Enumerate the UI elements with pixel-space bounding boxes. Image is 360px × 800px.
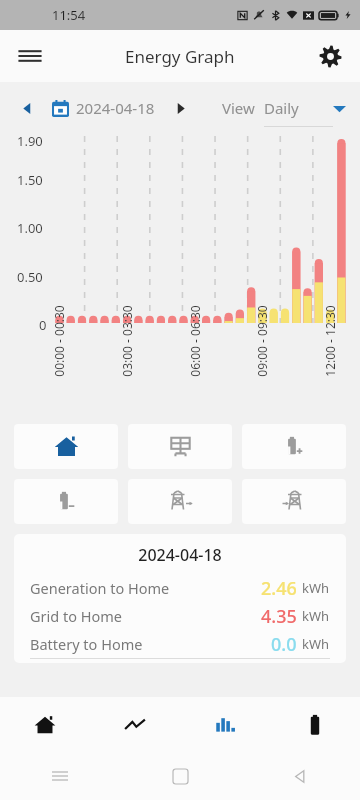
staticText: View [222, 98, 255, 118]
button[interactable]: From grid [242, 479, 346, 524]
staticText: kWh [302, 635, 330, 653]
button[interactable]: Battery charge [242, 424, 346, 469]
staticText: 0.50 [17, 268, 43, 286]
staticText: Battery to Home [30, 634, 143, 654]
button[interactable]: Home [14, 424, 118, 469]
button[interactable]: Battery [270, 697, 360, 752]
button[interactable]: Previous day [14, 95, 40, 121]
staticText: 06:00 - 06:30 [187, 305, 203, 377]
staticText: 00:00 - 00:30 [51, 305, 67, 377]
staticText: 2024-04-18 [76, 98, 155, 118]
staticText: kWh [302, 607, 330, 625]
staticText: Energy Graph [125, 45, 235, 68]
staticText: 2024-04-18 [30, 544, 330, 566]
button[interactable]: 2024-04-18 [52, 98, 155, 118]
staticText: 1.00 [17, 219, 43, 237]
staticText: Generation to Home [30, 578, 170, 598]
button[interactable]: Menu [10, 36, 50, 76]
staticText: 1.50 [17, 171, 43, 189]
button[interactable]: Trend [90, 697, 180, 752]
button[interactable]: Statistics [180, 697, 270, 752]
staticText: 1.90 [17, 132, 43, 150]
button[interactable]: Settings [310, 36, 350, 76]
staticText: 03:00 - 03:30 [119, 305, 135, 377]
staticText: Daily [264, 98, 299, 118]
button[interactable]: Solar [128, 424, 232, 469]
button[interactable]: Daily [264, 98, 346, 118]
staticText: 09:00 - 09:30 [254, 305, 270, 377]
staticText: 12:00 - 12:30 [322, 305, 338, 377]
staticText: kWh [302, 579, 330, 597]
staticText: Grid to Home [30, 606, 123, 626]
button[interactable]: Next day [167, 95, 193, 121]
staticText: 2.46 [261, 576, 297, 601]
staticText: 4.35 [261, 604, 297, 629]
button[interactable]: Battery discharge [14, 479, 118, 524]
staticText: 0.0 [271, 632, 297, 657]
button[interactable]: To grid [128, 479, 232, 524]
button[interactable]: Home [0, 697, 90, 752]
staticText: 0 [39, 316, 47, 334]
staticText: 11:54 [52, 6, 86, 24]
